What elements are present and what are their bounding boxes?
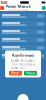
staticText: 12 belum dibaca bbox=[5, 9, 28, 12]
button[interactable] bbox=[0, 45, 45, 51]
staticText: Apakah Anda yakin ingin menghapus pesan … bbox=[10, 59, 35, 70]
staticText: Pesan Masuk bbox=[5, 3, 30, 9]
button[interactable]: Batal bbox=[9, 71, 22, 75]
staticText: 9:41 bbox=[0, 0, 7, 5]
button[interactable] bbox=[0, 13, 45, 19]
staticText: Batal bbox=[11, 71, 19, 75]
button[interactable] bbox=[0, 53, 45, 59]
button[interactable] bbox=[0, 21, 45, 27]
staticText: Hapus bbox=[26, 71, 35, 75]
button[interactable]: Hapus bbox=[24, 71, 37, 75]
button[interactable] bbox=[0, 29, 45, 35]
button[interactable] bbox=[0, 37, 45, 43]
staticText: Konfirmasi bbox=[12, 52, 34, 58]
